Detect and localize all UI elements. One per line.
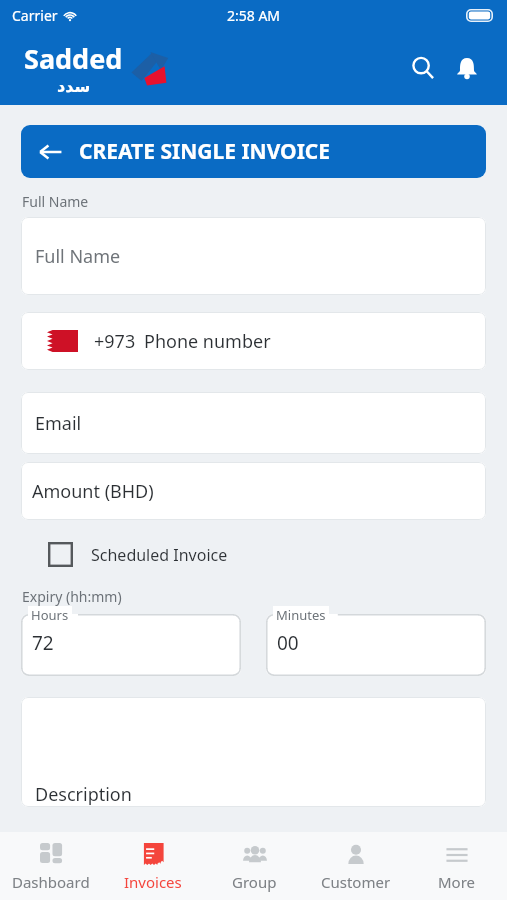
button[interactable]: Invoices xyxy=(102,832,204,900)
staticText: Hours xyxy=(31,606,69,624)
staticText: Description xyxy=(35,782,132,807)
button[interactable]: Minutes xyxy=(266,614,486,676)
staticText: Phone number xyxy=(144,329,271,354)
button[interactable]: Email xyxy=(21,392,486,454)
staticText: Full Name xyxy=(35,244,121,269)
button[interactable]: Amount (BHD) xyxy=(21,462,486,520)
button[interactable]: Notifications xyxy=(447,48,487,88)
staticText: 00 xyxy=(277,630,299,656)
button[interactable]: Group xyxy=(204,832,305,900)
button[interactable]: Customer xyxy=(305,832,406,900)
staticText: Amount (BHD) xyxy=(32,479,154,504)
staticText: Customer xyxy=(321,872,391,892)
button[interactable]: CREATE SINGLE INVOICE xyxy=(21,125,486,178)
staticText: Group xyxy=(232,872,277,892)
staticText: Sadded xyxy=(24,40,123,77)
button[interactable]: Description xyxy=(21,697,486,807)
staticText: CREATE SINGLE INVOICE xyxy=(79,137,331,166)
staticText: +973 xyxy=(94,329,136,354)
staticText: 72 xyxy=(32,630,54,656)
staticText: Email xyxy=(35,411,82,436)
staticText: Expiry (hh:mm) xyxy=(22,587,122,606)
staticText: Carrier xyxy=(12,6,58,25)
staticText: Full Name xyxy=(22,192,89,211)
staticText: Dashboard xyxy=(12,872,90,892)
staticText: Scheduled Invoice xyxy=(91,544,228,566)
staticText: More xyxy=(438,872,476,892)
button[interactable]: Hours xyxy=(21,614,241,676)
staticText: 2:58 AM xyxy=(227,6,281,25)
button[interactable]: Search xyxy=(403,48,443,88)
staticText: Minutes xyxy=(276,606,326,624)
button[interactable]: More xyxy=(406,832,507,900)
button[interactable]: Dashboard xyxy=(0,832,102,900)
staticText: سدد xyxy=(57,77,91,96)
button[interactable]: +973 xyxy=(21,312,486,370)
button[interactable]: Scheduled Invoice xyxy=(48,542,228,567)
staticText: Invoices xyxy=(124,872,182,892)
button[interactable]: Full Name xyxy=(21,217,486,295)
